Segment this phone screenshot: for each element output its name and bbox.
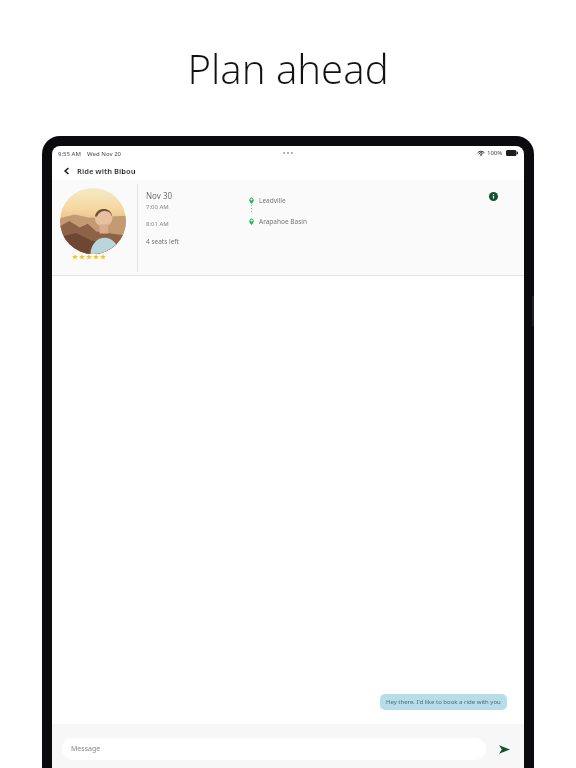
staticText: Nov 30 [146,190,173,201]
staticText: Hey there, I'd like to book a ride with … [386,698,501,706]
staticText: 4 seats left [146,237,179,246]
staticText: Message [71,744,101,754]
staticText: 100% [487,149,503,157]
staticText: Plan ahead [187,41,389,95]
staticText: Ride with Bibou [77,166,136,176]
button[interactable]: Send [494,739,514,759]
staticText: 7:00 AM [146,203,169,211]
button[interactable]: Back [60,164,74,178]
button[interactable]: Nov 30 [52,180,524,276]
button[interactable]: Trip information [486,189,500,203]
button[interactable]: Message [62,738,486,760]
staticText: Leadville [259,196,286,205]
button[interactable]: Hey there, I'd like to book a ride with … [380,694,507,710]
staticText: 8:01 AM [146,220,169,228]
staticText: Arapahoe Basin [259,217,307,226]
staticText: Wed Nov 20 [87,150,122,158]
staticText: 9:55 AM [58,150,81,158]
